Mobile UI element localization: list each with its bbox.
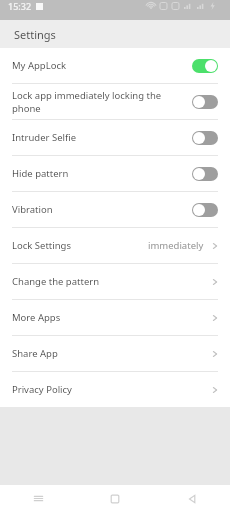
button[interactable]: Home — [76, 485, 153, 512]
button[interactable]: My AppLock — [0, 48, 230, 83]
button[interactable]: Intruder Selfie — [0, 120, 230, 155]
button[interactable]: Recent apps — [0, 485, 76, 512]
staticText: More Apps — [12, 311, 210, 324]
staticText: 15:32 — [8, 0, 32, 12]
button[interactable]: Lock app immediately locking the phone — [0, 84, 230, 119]
button[interactable]: Off — [192, 95, 218, 109]
staticText: Vibration — [12, 203, 192, 216]
button[interactable]: Off — [192, 167, 218, 181]
button[interactable]: Off — [192, 131, 218, 145]
button[interactable]: Share App — [0, 336, 230, 371]
staticText: Change the pattern — [12, 275, 210, 288]
staticText: Share App — [12, 347, 210, 360]
staticText: Privacy Policy — [12, 383, 210, 396]
staticText: My AppLock — [12, 59, 192, 72]
button[interactable]: On — [192, 59, 218, 73]
button[interactable]: Hide pattern — [0, 156, 230, 191]
button[interactable]: Back — [153, 485, 230, 512]
button[interactable]: Privacy Policy — [0, 372, 230, 407]
button[interactable]: Change the pattern — [0, 264, 230, 299]
staticText: Lock app immediately locking the phone — [12, 89, 192, 115]
button[interactable]: Lock Settings — [0, 228, 230, 263]
staticText: Settings — [14, 27, 56, 42]
staticText: immediately — [148, 239, 204, 252]
button[interactable]: Vibration — [0, 192, 230, 227]
button[interactable]: Off — [192, 203, 218, 217]
staticText: Hide pattern — [12, 167, 192, 180]
staticText: Intruder Selfie — [12, 131, 192, 144]
staticText: Lock Settings — [12, 239, 148, 252]
button[interactable]: More Apps — [0, 300, 230, 335]
